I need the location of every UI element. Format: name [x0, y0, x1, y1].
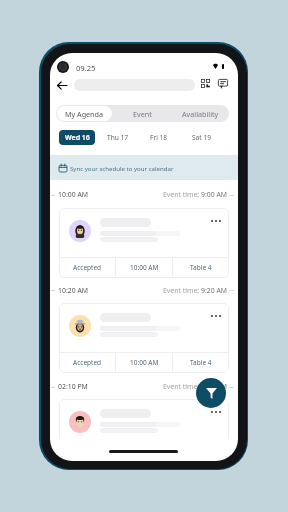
staticText: Accepted: [73, 358, 102, 367]
button[interactable]: Sync your schedule to your calendar: [50, 155, 238, 180]
staticText: Event time:: [163, 190, 201, 199]
button[interactable]: Wed 16: [59, 130, 95, 145]
button[interactable]: Back: [55, 78, 69, 92]
staticText: Sat 19: [192, 133, 211, 142]
button[interactable]: More options: [206, 308, 225, 323]
staticText: 02:10 PM: [58, 382, 88, 391]
staticText: Accepted: [73, 263, 102, 272]
staticText: Event time:: [163, 286, 201, 295]
staticText: My Agenda: [65, 109, 104, 119]
button[interactable]: Filter: [196, 378, 226, 408]
button[interactable]: Table 4: [173, 353, 229, 372]
button[interactable]: Scan QR code: [199, 77, 212, 90]
staticText: 10:00 AM: [130, 263, 159, 272]
staticText: Availability: [182, 109, 219, 119]
staticText: 9:20 AM: [201, 286, 228, 295]
staticText: Table 4: [190, 263, 212, 272]
staticText: Event time:: [163, 382, 201, 391]
button[interactable]: More options: [206, 404, 225, 419]
staticText: Sync your schedule to your calendar: [70, 164, 174, 172]
button[interactable]: Fri 18: [141, 130, 177, 145]
staticText: 10:00 AM: [58, 190, 89, 199]
staticText: Table 4: [190, 358, 212, 367]
staticText: Thu 17: [107, 133, 129, 142]
button[interactable]: Event: [113, 105, 171, 122]
staticText: Wed 16: [65, 133, 90, 143]
button[interactable]: 10:00 AM: [116, 353, 172, 372]
button[interactable]: Accepted: [59, 258, 115, 277]
staticText: 9:00 AM: [201, 190, 228, 199]
button[interactable]: More options: [59, 208, 229, 278]
button[interactable]: More options: [59, 303, 229, 373]
button[interactable]: Availability: [171, 105, 229, 122]
button[interactable]: More options: [206, 213, 225, 228]
button[interactable]: Accepted: [59, 353, 115, 372]
staticText: 1:50 PM: [201, 382, 227, 391]
staticText: 10:20 AM: [58, 286, 89, 295]
button[interactable]: Table 4: [173, 258, 229, 277]
staticText: Fri 18: [150, 133, 168, 142]
button[interactable]: Sat 19: [183, 130, 219, 145]
button[interactable]: Messages: [216, 77, 229, 90]
staticText: Event: [133, 109, 152, 119]
button[interactable]: 10:00 AM: [116, 258, 172, 277]
button[interactable]: More options: [59, 399, 229, 439]
button[interactable]: My Agenda: [57, 106, 112, 121]
button[interactable]: Thu 17: [100, 130, 136, 145]
staticText: 09.25: [76, 63, 96, 73]
staticText: 10:00 AM: [130, 358, 159, 367]
